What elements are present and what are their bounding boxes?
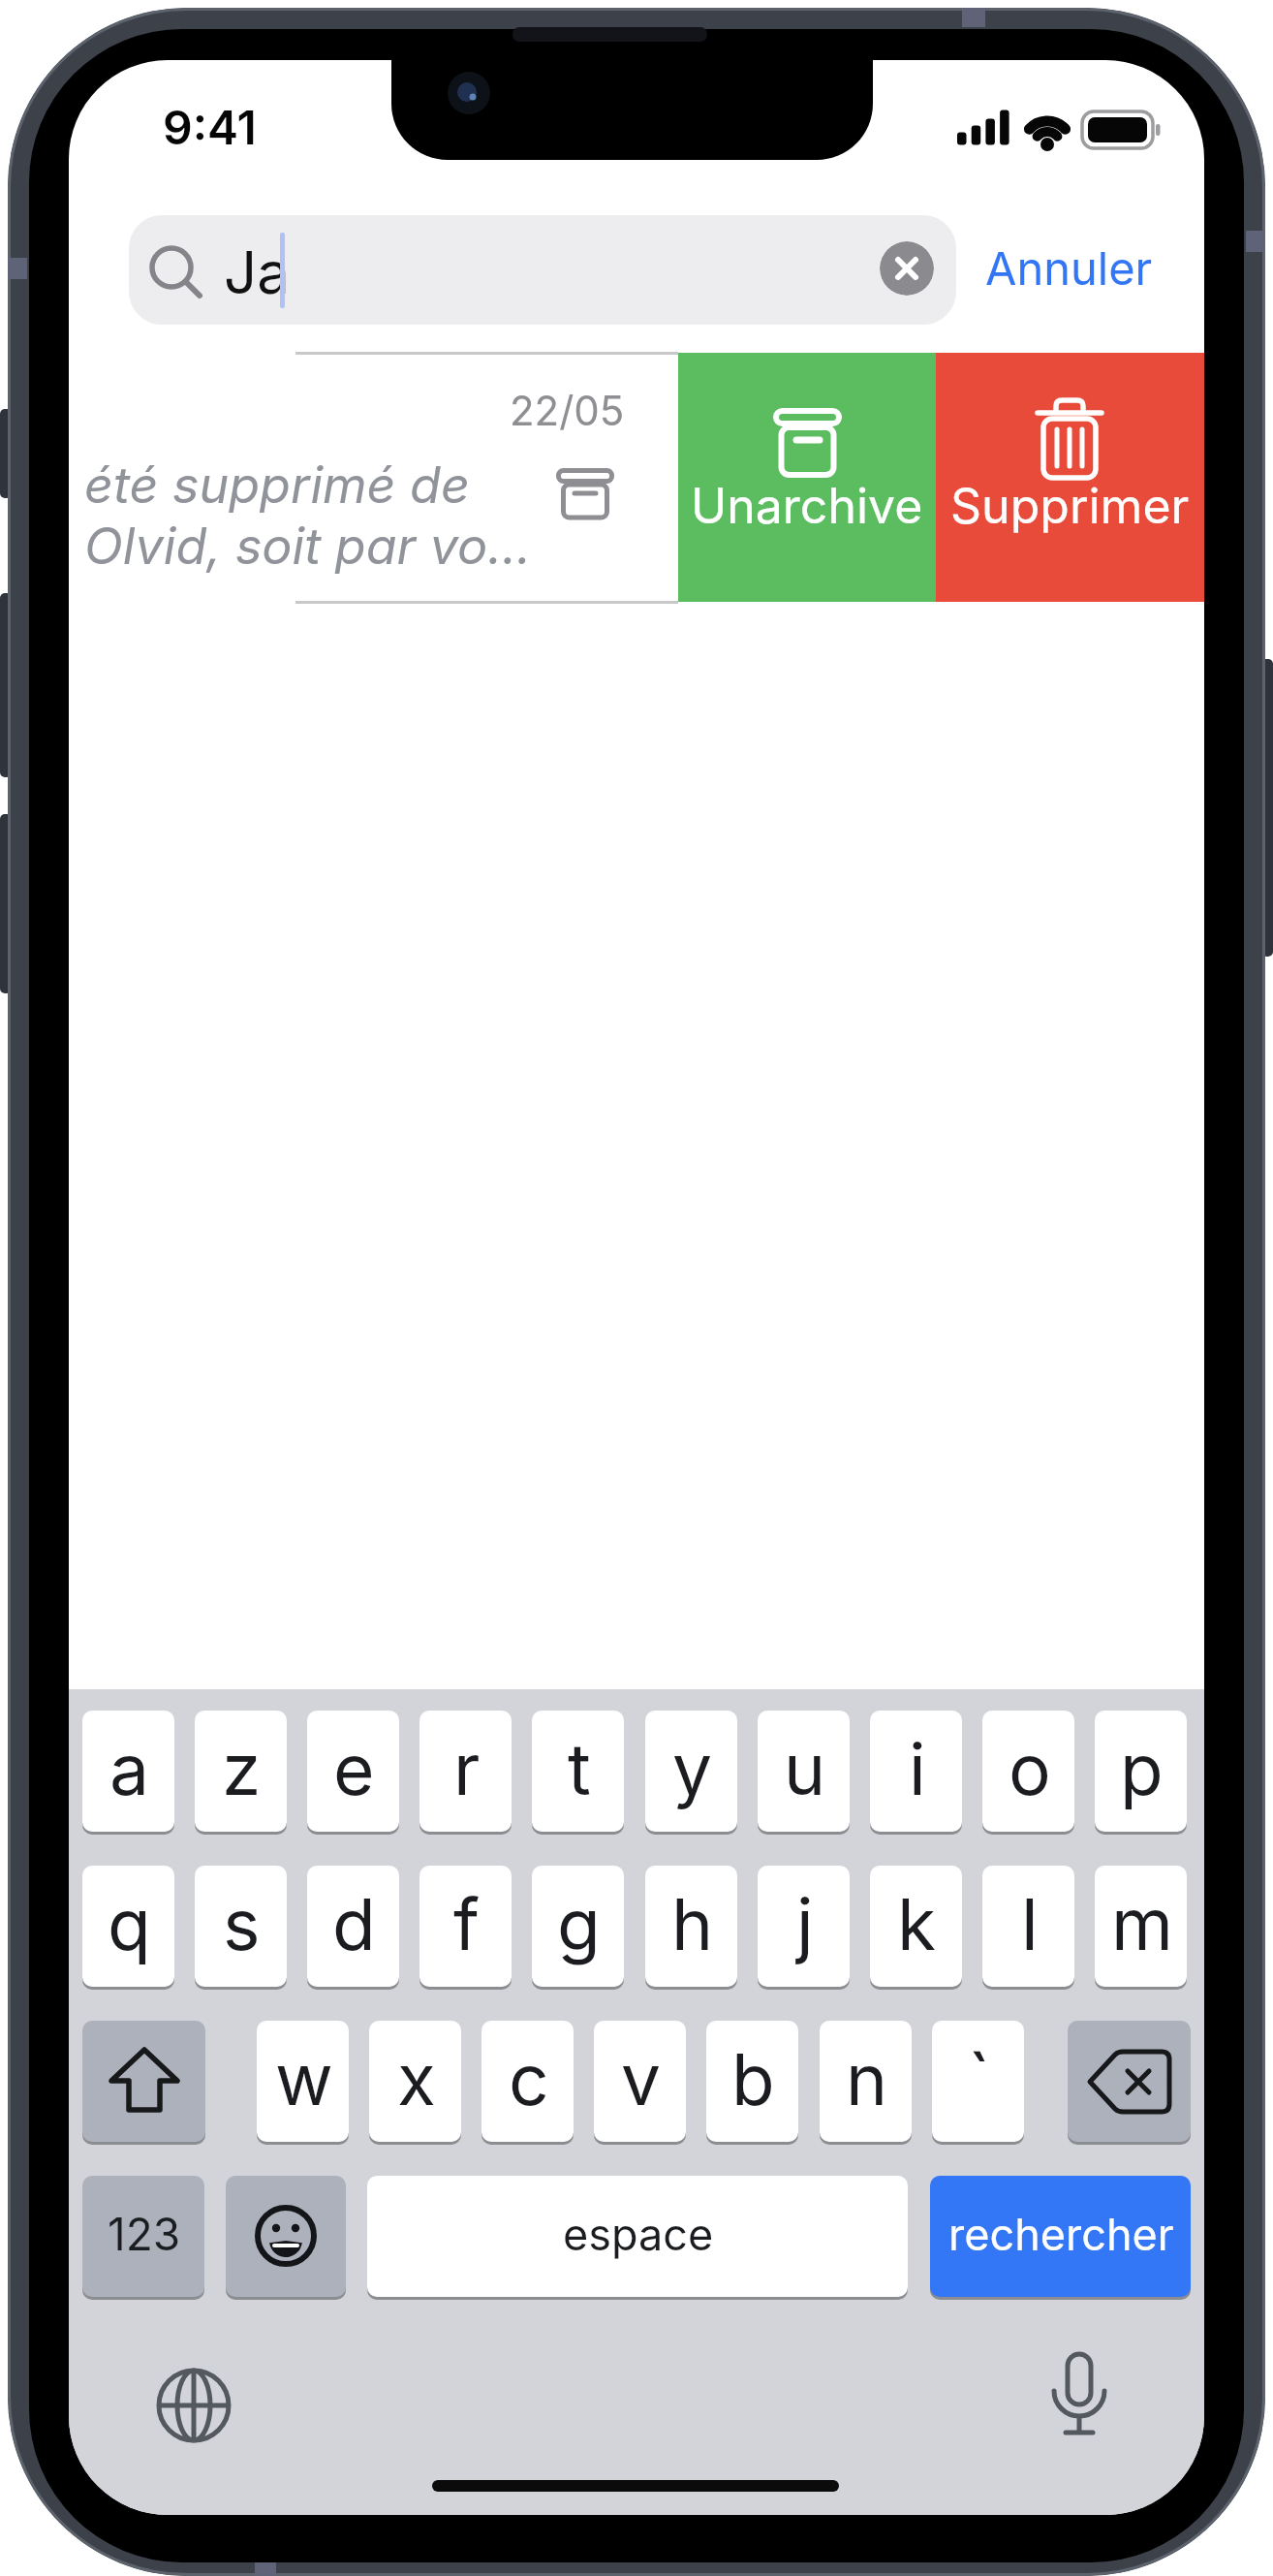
button[interactable]: ` <box>932 2021 1024 2142</box>
button[interactable] <box>69 353 678 602</box>
button[interactable]: k <box>870 1866 962 1987</box>
staticText: a <box>109 1726 149 1811</box>
button[interactable]: h <box>645 1866 737 1987</box>
button[interactable]: v <box>594 2021 686 2142</box>
button[interactable]: q <box>82 1866 174 1987</box>
button[interactable]: d <box>307 1866 399 1987</box>
staticText: Annuler <box>985 240 1153 296</box>
staticText: e <box>333 1726 375 1811</box>
button[interactable] <box>156 2368 232 2443</box>
staticText: s <box>223 1881 261 1966</box>
staticText: c <box>509 2036 549 2121</box>
staticText: j <box>796 1881 814 1966</box>
staticText: y <box>672 1726 713 1811</box>
button[interactable] <box>226 2176 346 2297</box>
button[interactable]: e <box>307 1711 399 1832</box>
button[interactable]: j <box>758 1866 850 1987</box>
staticText: été supprimé de Olvid, soit par vo… <box>84 455 532 576</box>
staticText: h <box>671 1881 714 1966</box>
button[interactable]: s <box>195 1866 287 1987</box>
staticText: p <box>1120 1726 1164 1811</box>
staticText: ` <box>968 2036 991 2121</box>
staticText: Ja <box>224 237 290 308</box>
button[interactable]: l <box>982 1866 1074 1987</box>
button[interactable]: w <box>257 2021 349 2142</box>
button[interactable]: o <box>982 1711 1074 1832</box>
button[interactable]: g <box>532 1866 624 1987</box>
button[interactable]: p <box>1095 1711 1187 1832</box>
button[interactable] <box>678 353 936 602</box>
staticText: Supprimer <box>950 477 1190 535</box>
staticText: x <box>397 2036 436 2121</box>
staticText: i <box>909 1726 926 1811</box>
button[interactable]: rechercher <box>930 2176 1191 2297</box>
button[interactable]: espace <box>367 2176 908 2297</box>
button[interactable]: m <box>1095 1866 1187 1987</box>
staticText: d <box>332 1881 376 1966</box>
button[interactable]: 123 <box>82 2176 204 2297</box>
button[interactable]: t <box>532 1711 624 1832</box>
staticText: b <box>731 2036 775 2121</box>
staticText: r <box>453 1726 481 1811</box>
button[interactable]: Annuler <box>979 225 1147 280</box>
button[interactable]: x <box>369 2021 461 2142</box>
staticText: o <box>1009 1726 1051 1811</box>
staticText: g <box>557 1881 601 1966</box>
button[interactable]: b <box>706 2021 798 2142</box>
button[interactable]: z <box>195 1711 287 1832</box>
staticText: w <box>275 2036 333 2121</box>
staticText: 9:41 <box>163 99 257 155</box>
staticText: 123 <box>108 2207 181 2261</box>
staticText: t <box>568 1726 591 1811</box>
button[interactable] <box>1049 2352 1109 2445</box>
button[interactable]: u <box>758 1711 850 1832</box>
button[interactable] <box>1068 2021 1191 2142</box>
staticText: rechercher <box>948 2208 1174 2260</box>
staticText: k <box>897 1881 937 1966</box>
staticText: 22/05 <box>510 386 625 435</box>
button[interactable]: c <box>481 2021 574 2142</box>
button[interactable] <box>936 353 1204 602</box>
staticText: z <box>222 1726 262 1811</box>
staticText: n <box>846 2036 888 2121</box>
staticText: u <box>784 1726 826 1811</box>
button[interactable] <box>129 215 956 325</box>
staticText: q <box>108 1881 151 1966</box>
button[interactable]: y <box>645 1711 737 1832</box>
staticText: l <box>1021 1881 1039 1966</box>
button[interactable]: f <box>419 1866 512 1987</box>
staticText: espace <box>563 2208 714 2260</box>
button[interactable]: i <box>870 1711 962 1832</box>
staticText: v <box>621 2036 662 2121</box>
button[interactable]: a <box>82 1711 174 1832</box>
button[interactable]: n <box>820 2021 912 2142</box>
button[interactable] <box>82 2021 205 2142</box>
button[interactable] <box>880 241 934 296</box>
staticText: Unarchive <box>691 477 923 535</box>
staticText: m <box>1111 1881 1173 1966</box>
staticText: f <box>453 1881 481 1966</box>
button[interactable]: r <box>419 1711 512 1832</box>
